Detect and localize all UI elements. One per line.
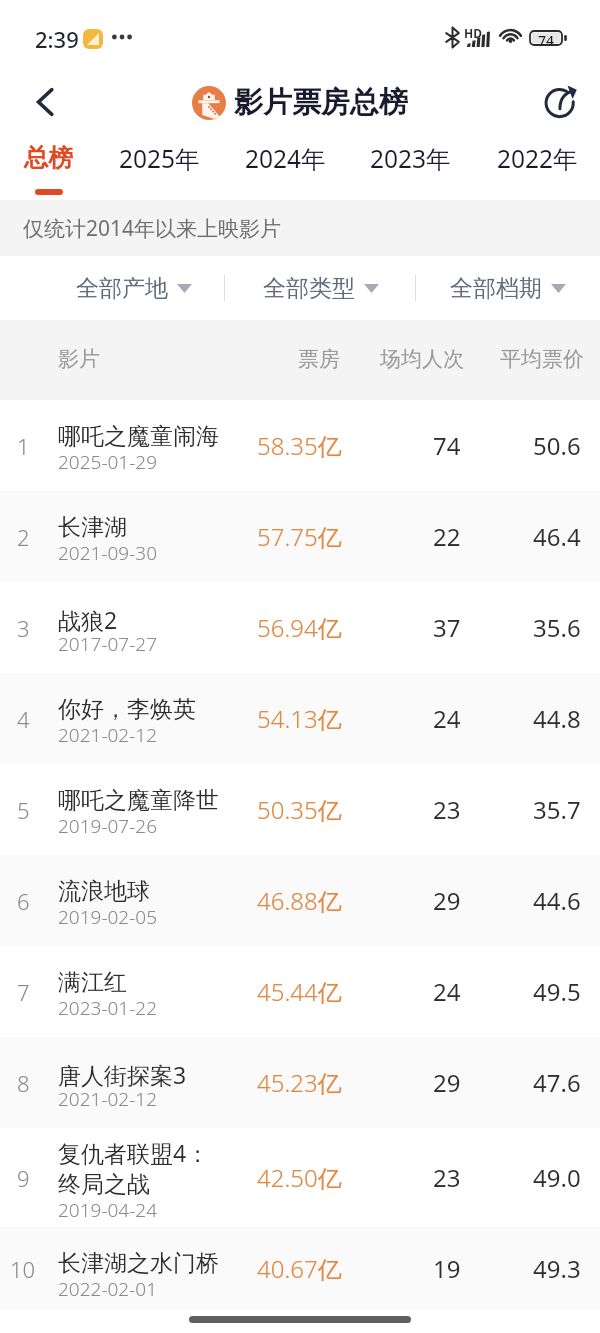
staticText: 哪吒之魔童闹海 xyxy=(58,422,219,451)
staticText: 2021-02-12 xyxy=(58,1086,158,1112)
staticText: 复仇者联盟4： xyxy=(58,1137,210,1168)
staticText: 2 xyxy=(17,522,30,552)
staticText: 23 xyxy=(433,793,461,826)
staticText: 2019-04-24 xyxy=(58,1197,158,1223)
staticText: 1 xyxy=(17,431,30,461)
button[interactable]: 9 xyxy=(0,1128,600,1227)
staticText: 满江红 xyxy=(58,968,127,997)
staticText: 2025年 xyxy=(119,142,200,175)
staticText: 唐人街探案3 xyxy=(58,1059,187,1090)
staticText: 总榜 xyxy=(24,142,73,173)
staticText: 44.8 xyxy=(533,702,581,735)
staticText: 哪吒之魔童降世 xyxy=(58,786,219,815)
button[interactable]: 2025年 xyxy=(103,140,215,200)
staticText: 35.6 xyxy=(533,611,581,644)
staticText: 42.50亿 xyxy=(257,1161,342,1194)
button[interactable]: 6 xyxy=(0,855,600,946)
staticText: 2019-07-26 xyxy=(58,813,158,839)
staticText: 46.88亿 xyxy=(257,884,342,917)
staticText: 长津湖 xyxy=(58,513,127,542)
staticText: 6 xyxy=(17,886,30,916)
staticText: 47.6 xyxy=(533,1066,581,1099)
staticText: 49.3 xyxy=(533,1252,581,1285)
button[interactable]: 8 xyxy=(0,1037,600,1128)
button[interactable]: Back xyxy=(0,64,86,140)
button[interactable]: 全部类型 xyxy=(254,256,388,320)
staticText: 4 xyxy=(17,704,30,734)
staticText: 2:39 xyxy=(35,24,79,54)
staticText: 3 xyxy=(17,613,30,643)
staticText: 10 xyxy=(10,1254,36,1284)
staticText: 8 xyxy=(17,1068,30,1098)
staticText: 46.4 xyxy=(533,520,581,553)
staticText: 5 xyxy=(17,795,30,825)
staticText: 50.6 xyxy=(533,429,581,462)
staticText: 54.13亿 xyxy=(257,702,342,735)
button[interactable]: 全部档期 xyxy=(441,256,575,320)
staticText: 29 xyxy=(433,1066,461,1099)
staticText: 终局之战 xyxy=(58,1170,150,1199)
staticText: 2021-02-12 xyxy=(58,722,158,748)
staticText: 流浪地球 xyxy=(58,877,150,906)
staticText: 40.67亿 xyxy=(257,1252,342,1285)
staticText: 24 xyxy=(433,702,461,735)
staticText: 45.44亿 xyxy=(257,975,342,1008)
staticText: 50.35亿 xyxy=(257,793,342,826)
staticText: 票房 xyxy=(298,346,340,372)
staticText: 场均人次 xyxy=(380,346,464,372)
button[interactable]: 全部产地 xyxy=(67,256,201,320)
button[interactable]: 3 xyxy=(0,582,600,673)
staticText: 49.5 xyxy=(533,975,581,1008)
staticText: 24 xyxy=(433,975,461,1008)
staticText: 19 xyxy=(433,1252,461,1285)
staticText: 全部档期 xyxy=(450,274,542,303)
staticText: 44.6 xyxy=(533,884,581,917)
button[interactable]: 总榜 xyxy=(0,140,104,200)
staticText: 2021-09-30 xyxy=(58,540,158,566)
button[interactable]: 2022年 xyxy=(481,140,593,200)
button[interactable]: 1 xyxy=(0,400,600,491)
staticText: 7 xyxy=(17,977,30,1007)
staticText: 45.23亿 xyxy=(257,1066,342,1099)
button[interactable]: 7 xyxy=(0,946,600,1037)
button[interactable]: 2 xyxy=(0,491,600,582)
button[interactable]: 10 xyxy=(0,1227,600,1310)
staticText: 2023年 xyxy=(370,142,451,175)
staticText: 2024年 xyxy=(245,142,326,175)
staticText: 74 xyxy=(538,31,555,45)
staticText: 长津湖之水门桥 xyxy=(58,1249,219,1278)
staticText: 9 xyxy=(17,1163,30,1193)
staticText: 74 xyxy=(433,429,461,462)
staticText: 35.7 xyxy=(533,793,581,826)
staticText: 影片 xyxy=(58,346,100,372)
staticText: HD xyxy=(464,25,482,41)
staticText: 你好，李焕英 xyxy=(58,695,196,724)
staticText: 2023-01-22 xyxy=(58,995,158,1021)
staticText: 58.35亿 xyxy=(257,429,342,462)
staticText: 22 xyxy=(433,520,461,553)
staticText: 23 xyxy=(433,1161,461,1194)
button[interactable]: 4 xyxy=(0,673,600,764)
staticText: 2022年 xyxy=(497,142,578,175)
staticText: 全部类型 xyxy=(263,274,355,303)
staticText: 全部产地 xyxy=(76,274,168,303)
staticText: 影片票房总榜 xyxy=(234,84,408,121)
staticText: 2025-01-29 xyxy=(58,449,158,475)
button[interactable]: 5 xyxy=(0,764,600,855)
staticText: 平均票价 xyxy=(500,346,584,372)
staticText: 2017-07-27 xyxy=(58,631,158,657)
staticText: 29 xyxy=(433,884,461,917)
staticText: 2019-02-05 xyxy=(58,904,158,930)
button[interactable]: 2023年 xyxy=(354,140,466,200)
staticText: 战狼2 xyxy=(58,604,118,635)
button[interactable]: Share xyxy=(522,64,600,140)
staticText: 57.75亿 xyxy=(257,520,342,553)
staticText: 37 xyxy=(433,611,461,644)
staticText: 仅统计2014年以来上映影片 xyxy=(23,214,282,243)
button[interactable]: 2024年 xyxy=(229,140,341,200)
staticText: 56.94亿 xyxy=(257,611,342,644)
staticText: 2022-02-01 xyxy=(58,1276,158,1302)
staticText: 49.0 xyxy=(533,1161,581,1194)
